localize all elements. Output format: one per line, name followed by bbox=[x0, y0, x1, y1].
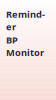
staticText: Reminder bbox=[6, 8, 45, 33]
staticText: BP Monitor bbox=[6, 34, 44, 59]
